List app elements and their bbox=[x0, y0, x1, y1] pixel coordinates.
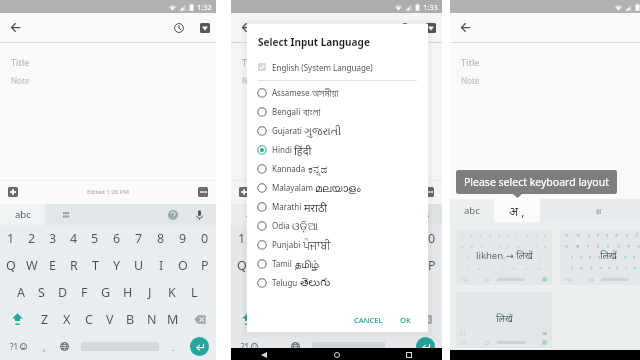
button[interactable]: D bbox=[52, 279, 73, 306]
button[interactable]: अ , bbox=[494, 199, 540, 222]
button[interactable]: Shift bbox=[231, 306, 263, 333]
button[interactable]: 1 bbox=[231, 225, 253, 252]
button[interactable]: ?1 bbox=[231, 333, 267, 360]
button[interactable]: T bbox=[84, 252, 106, 279]
button[interactable]: Telugu bbox=[247, 273, 428, 292]
button[interactable]: E bbox=[42, 252, 63, 279]
button[interactable]: M bbox=[389, 306, 410, 333]
button[interactable]: D bbox=[284, 279, 305, 306]
button[interactable]: Backspace bbox=[410, 306, 442, 333]
button[interactable]: Back bbox=[6, 18, 25, 37]
button[interactable]: 7 bbox=[128, 225, 150, 252]
button[interactable]: J bbox=[139, 279, 161, 306]
button[interactable]: Reminder bbox=[395, 18, 414, 37]
button[interactable]: N bbox=[368, 306, 389, 333]
button[interactable]: Archive bbox=[421, 18, 440, 37]
button[interactable]: V bbox=[99, 306, 120, 333]
button[interactable]: 5 bbox=[316, 225, 337, 252]
button[interactable]: Help bbox=[165, 207, 181, 223]
button[interactable]: 4 bbox=[63, 225, 84, 252]
button[interactable]: OK bbox=[395, 311, 416, 329]
button[interactable]: 5 bbox=[84, 225, 106, 252]
button[interactable]: 1 bbox=[456, 230, 552, 285]
button[interactable]: Odia bbox=[247, 216, 428, 235]
button[interactable]: N bbox=[141, 306, 162, 333]
button[interactable]: C bbox=[305, 306, 326, 333]
button[interactable]: U bbox=[128, 252, 150, 279]
button[interactable]: Enter bbox=[408, 333, 442, 360]
button[interactable]: अ bbox=[560, 230, 640, 285]
button[interactable]: R bbox=[63, 252, 84, 279]
button[interactable]: More options bbox=[198, 187, 208, 197]
button[interactable]: P bbox=[194, 252, 216, 279]
button[interactable]: 9 bbox=[172, 225, 194, 252]
button[interactable]: X bbox=[284, 306, 305, 333]
button[interactable]: F bbox=[305, 279, 326, 306]
button[interactable]: G bbox=[95, 279, 117, 306]
button[interactable]: Add bbox=[239, 187, 249, 197]
button[interactable]: , bbox=[267, 333, 284, 360]
button[interactable]: . bbox=[165, 333, 182, 360]
button[interactable]: , bbox=[36, 333, 53, 360]
button[interactable]: Change language bbox=[284, 333, 306, 360]
button[interactable]: O bbox=[172, 252, 194, 279]
button[interactable]: F bbox=[73, 279, 95, 306]
button[interactable]: K bbox=[161, 279, 183, 306]
button[interactable]: Tamil bbox=[247, 254, 428, 273]
button[interactable]: 4 bbox=[295, 225, 316, 252]
button[interactable]: Reminder bbox=[169, 18, 188, 37]
button[interactable]: क्ष bbox=[540, 199, 640, 222]
button[interactable]: Malayalam bbox=[247, 178, 428, 197]
button[interactable]: abc bbox=[0, 204, 45, 225]
button[interactable]: Shift bbox=[0, 306, 34, 333]
button[interactable]: B bbox=[120, 306, 141, 333]
button[interactable]: Layout bbox=[276, 204, 442, 225]
button[interactable]: Please select keyboard layout bbox=[456, 170, 617, 194]
button[interactable]: Enter bbox=[182, 333, 216, 360]
button[interactable]: L bbox=[410, 279, 431, 306]
button[interactable]: ?1 bbox=[0, 333, 36, 360]
button[interactable]: H bbox=[117, 279, 139, 306]
button[interactable]: Back bbox=[237, 18, 256, 37]
button[interactable]: P bbox=[421, 252, 442, 279]
button[interactable]: 6 bbox=[106, 225, 128, 252]
button[interactable]: Hindi bbox=[247, 140, 428, 159]
button[interactable]: E bbox=[274, 252, 295, 279]
button[interactable]: Assamese bbox=[247, 83, 428, 102]
button[interactable]: L bbox=[183, 279, 205, 306]
button[interactable]: abc bbox=[450, 199, 494, 222]
button[interactable]: 2 bbox=[253, 225, 274, 252]
button[interactable]: Q bbox=[0, 252, 21, 279]
button[interactable]: Bengali bbox=[247, 102, 428, 121]
button[interactable]: 2 bbox=[21, 225, 42, 252]
button[interactable]: A bbox=[10, 279, 31, 306]
button[interactable]: 3 bbox=[42, 225, 63, 252]
button[interactable]: M bbox=[162, 306, 183, 333]
button[interactable]: Space bbox=[312, 342, 385, 351]
button[interactable]: ?!☺ bbox=[456, 292, 552, 348]
button[interactable]: CANCEL bbox=[349, 311, 388, 329]
button[interactable]: B bbox=[347, 306, 368, 333]
button[interactable]: S bbox=[31, 279, 52, 306]
button[interactable]: A bbox=[242, 279, 263, 306]
button[interactable]: More options bbox=[424, 187, 434, 197]
button[interactable]: Back bbox=[456, 18, 475, 37]
button[interactable]: G bbox=[326, 279, 347, 306]
button[interactable]: 0 bbox=[421, 225, 442, 252]
button[interactable]: Z bbox=[34, 306, 56, 333]
button[interactable]: Layout bbox=[45, 204, 216, 225]
button[interactable]: 3 bbox=[274, 225, 295, 252]
button[interactable]: Gujarati bbox=[247, 121, 428, 140]
button[interactable]: Punjabi bbox=[247, 235, 428, 254]
